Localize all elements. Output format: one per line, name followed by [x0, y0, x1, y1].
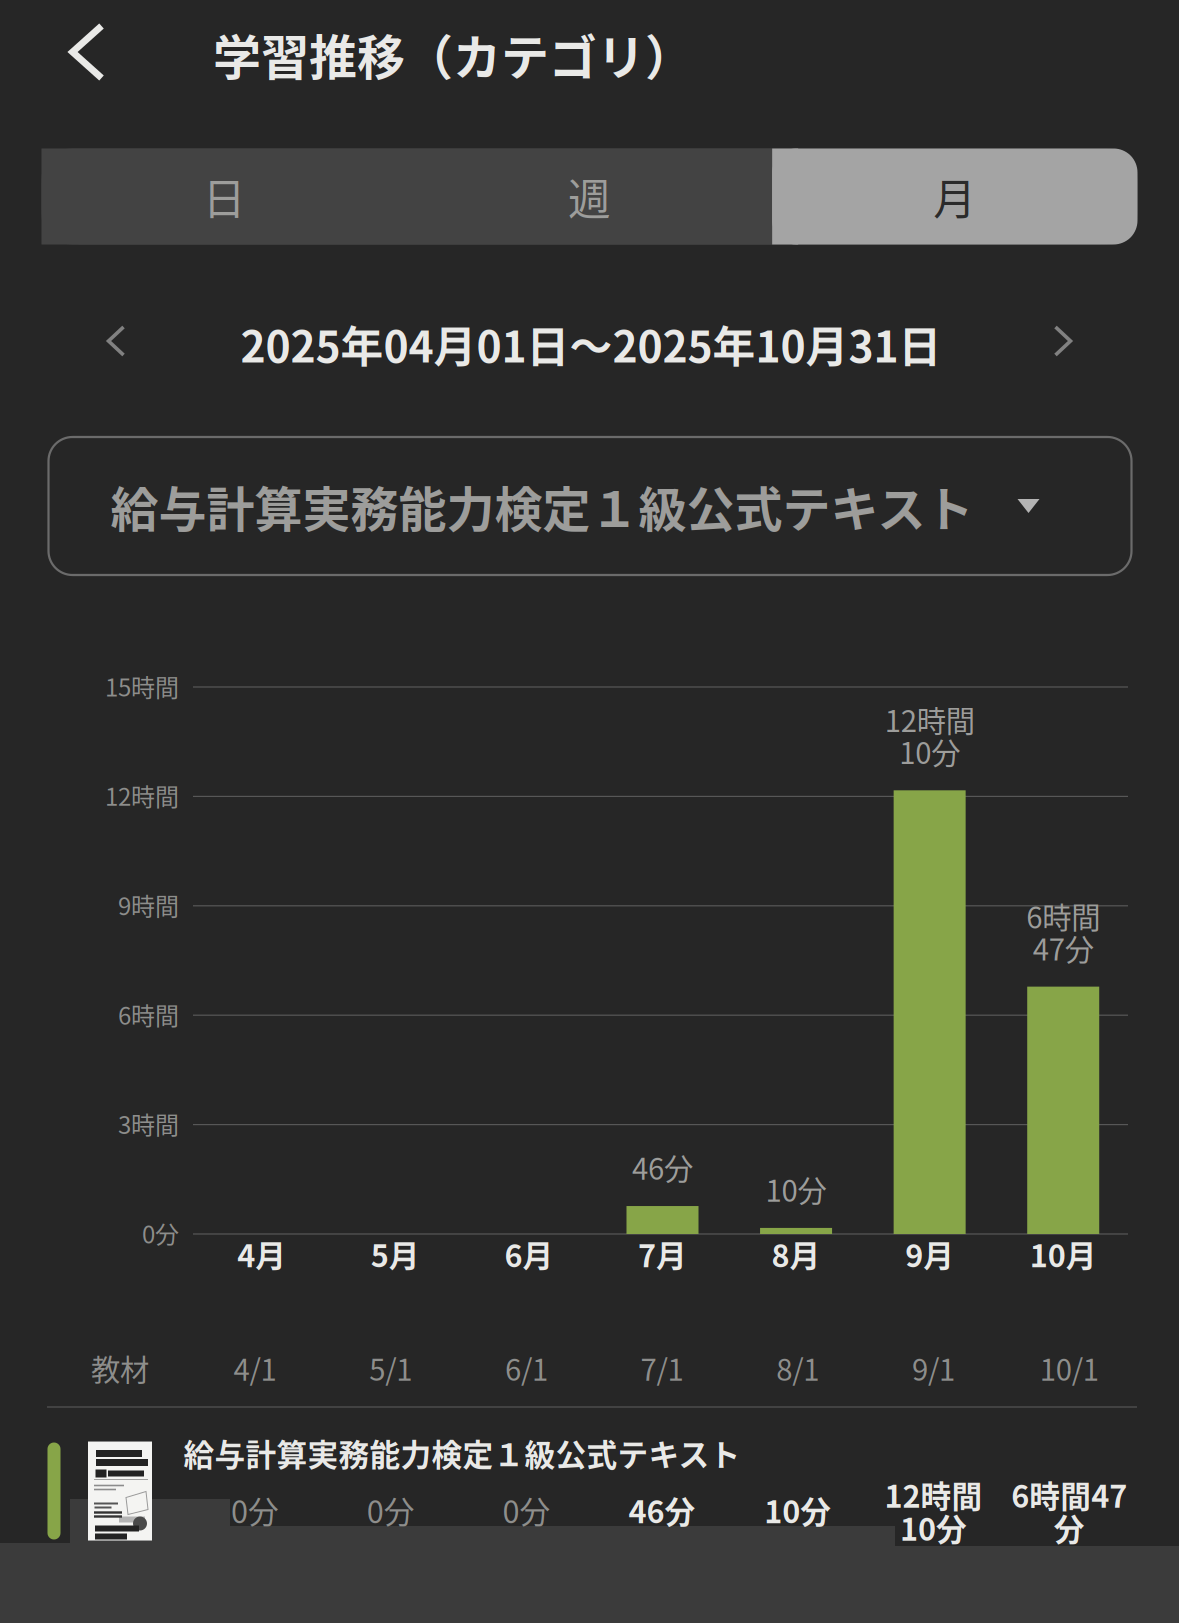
button[interactable]: 日	[41, 148, 407, 244]
staticText: 給与計算実務能力検定１級公式テキスト	[110, 471, 973, 541]
staticText: 8月	[772, 1232, 821, 1276]
button[interactable]: 週	[407, 148, 772, 244]
staticText: 10分	[900, 1505, 967, 1550]
staticText: 9/1	[912, 1347, 955, 1389]
staticText: 給与計算実務能力検定１級公式テキスト	[183, 1431, 740, 1475]
staticText: 7/1	[641, 1347, 684, 1389]
button[interactable]: Next period	[1024, 302, 1102, 380]
staticText: 12時間	[105, 778, 179, 813]
button[interactable]: Back	[39, 4, 135, 100]
staticText: 47分	[1033, 926, 1094, 969]
staticText: 10月	[1030, 1232, 1097, 1276]
staticText: 2025年04月01日〜2025年10月31日	[240, 313, 941, 375]
staticText: 12時間	[884, 1472, 982, 1517]
staticText: 6時間47	[1011, 1472, 1127, 1517]
staticText: 9月	[905, 1232, 954, 1276]
staticText: 46分	[629, 1488, 696, 1532]
staticText: 教材	[91, 1347, 149, 1389]
staticText: 10分	[766, 1168, 827, 1210]
staticText: 学習推移（カテゴリ）	[213, 19, 693, 89]
button[interactable]: Previous period	[77, 302, 155, 380]
staticText: 3時間	[118, 1106, 179, 1141]
staticText: 0分	[367, 1488, 415, 1532]
staticText: 10分	[764, 1488, 831, 1532]
staticText: 0分	[502, 1488, 550, 1532]
staticText: 5月	[371, 1232, 420, 1276]
staticText: 10分	[899, 730, 960, 773]
staticText: 6/1	[505, 1347, 548, 1389]
staticText: 46分	[632, 1146, 693, 1188]
staticText: 6時間	[1026, 894, 1100, 937]
staticText: 週	[568, 166, 611, 227]
staticText: 6時間	[118, 997, 179, 1032]
staticText: 10/1	[1040, 1347, 1099, 1389]
staticText: 9時間	[118, 887, 179, 922]
staticText: 日	[203, 166, 246, 227]
staticText: 0分	[231, 1488, 279, 1532]
staticText: 15時間	[105, 669, 179, 703]
staticText: 5/1	[369, 1347, 412, 1389]
staticText: 分	[1054, 1505, 1085, 1550]
button[interactable]: 月	[772, 148, 1137, 244]
button[interactable]: 給与計算実務能力検定１級公式テキスト	[48, 437, 1131, 575]
staticText: 4月	[237, 1232, 286, 1276]
staticText: 月	[933, 166, 976, 227]
staticText: 7月	[638, 1232, 687, 1276]
staticText: 6月	[504, 1232, 553, 1276]
staticText: 12時間	[885, 698, 975, 741]
staticText: 8/1	[776, 1347, 819, 1389]
staticText: 4/1	[233, 1347, 276, 1389]
staticText: 0分	[142, 1216, 179, 1250]
